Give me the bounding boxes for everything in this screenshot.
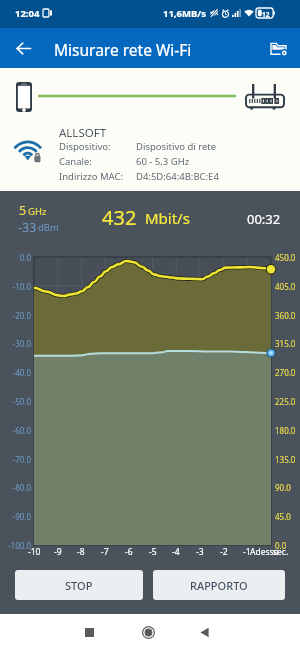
staticText: -30.0 bbox=[0, 338, 31, 349]
staticText: 0.0 bbox=[275, 540, 287, 551]
staticText: 270.0 bbox=[275, 367, 296, 378]
staticText: -70.0 bbox=[0, 454, 31, 465]
staticText: -1 bbox=[243, 546, 251, 558]
staticText: ALLSOFT bbox=[59, 125, 107, 141]
staticText: GHz bbox=[28, 205, 47, 218]
staticText: 12:04 bbox=[15, 7, 40, 20]
button[interactable]: STOP bbox=[15, 570, 143, 600]
staticText: 00:32 bbox=[247, 210, 281, 228]
staticText: 450.0 bbox=[275, 252, 296, 263]
staticText: -7 bbox=[101, 546, 109, 558]
staticText: -33 bbox=[18, 219, 37, 236]
button[interactable]: Back bbox=[0, 28, 46, 68]
staticText: -9 bbox=[54, 546, 62, 558]
staticText: 180.0 bbox=[275, 425, 296, 436]
staticText: 60 - 5,3 GHz bbox=[136, 155, 190, 168]
staticText: Dispositivo: bbox=[59, 140, 111, 153]
staticText: -90.0 bbox=[0, 511, 31, 522]
staticText: -4 bbox=[172, 546, 180, 558]
staticText: -40.0 bbox=[0, 367, 31, 378]
staticText: dBm bbox=[38, 221, 59, 234]
staticText: Canale: bbox=[59, 155, 92, 168]
button[interactable]: Home bbox=[128, 614, 168, 650]
staticText: -10 bbox=[28, 546, 41, 558]
staticText: 315.0 bbox=[275, 338, 296, 349]
staticText: Misurare rete Wi-Fi bbox=[54, 39, 192, 60]
staticText: 225.0 bbox=[275, 396, 296, 407]
staticText: 90.0 bbox=[275, 482, 291, 493]
staticText: 405.0 bbox=[275, 281, 296, 292]
staticText: -50.0 bbox=[0, 396, 31, 407]
staticText: Indirizzo MAC: bbox=[59, 170, 123, 183]
button[interactable]: Back bbox=[184, 614, 224, 650]
staticText: -60.0 bbox=[0, 425, 31, 436]
staticText: sec. bbox=[273, 546, 289, 558]
staticText: STOP bbox=[65, 578, 93, 593]
staticText: -80.0 bbox=[0, 482, 31, 493]
staticText: 135.0 bbox=[275, 454, 296, 465]
staticText: 45.0 bbox=[275, 511, 291, 522]
staticText: -8 bbox=[77, 546, 85, 558]
staticText: Mbit/s bbox=[145, 208, 190, 228]
staticText: -3 bbox=[196, 546, 204, 558]
button[interactable]: Recent apps bbox=[69, 614, 109, 650]
staticText: 0.0 bbox=[0, 252, 31, 263]
staticText: D4:5D:64:4B:BC:E4 bbox=[136, 170, 219, 183]
staticText: -100.0 bbox=[0, 540, 31, 551]
button[interactable]: Saved reports bbox=[258, 28, 298, 68]
staticText: -20.0 bbox=[0, 310, 31, 321]
staticText: Dispositivo di rete bbox=[136, 140, 217, 153]
staticText: 12 bbox=[262, 10, 270, 19]
staticText: RAPPORTO bbox=[190, 578, 248, 593]
staticText: 5 bbox=[19, 202, 27, 219]
staticText: Adesso bbox=[250, 546, 279, 558]
staticText: -10.0 bbox=[0, 281, 31, 292]
staticText: 11,6MB/s bbox=[163, 7, 206, 20]
staticText: 432 bbox=[102, 204, 137, 231]
staticText: 360.0 bbox=[275, 310, 296, 321]
staticText: -5 bbox=[149, 546, 157, 558]
staticText: -2 bbox=[220, 546, 228, 558]
staticText: -6 bbox=[125, 546, 133, 558]
button[interactable]: RAPPORTO bbox=[153, 570, 285, 600]
